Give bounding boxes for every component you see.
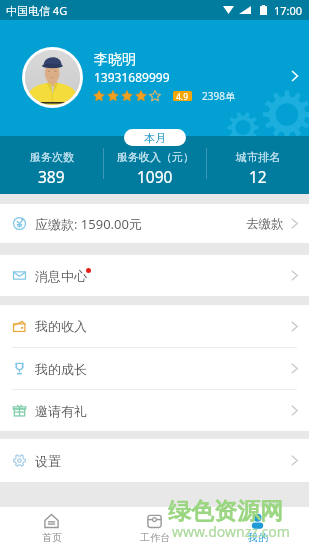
staticText: 城市排名: [236, 150, 280, 164]
button[interactable]: 我的收入: [0, 305, 309, 347]
button[interactable]: 本月: [124, 129, 186, 146]
staticText: 服务收入（元）: [117, 150, 194, 164]
staticText: 中国电信 4G: [6, 3, 68, 18]
staticText: 12: [249, 166, 267, 187]
staticText: 13931689999: [94, 69, 170, 85]
staticText: 工作台: [140, 531, 170, 544]
staticText: 消息中心: [35, 268, 87, 284]
button[interactable]: 我的: [206, 507, 309, 550]
staticText: 邀请有礼: [35, 403, 87, 419]
staticText: 17:00: [274, 3, 303, 18]
button[interactable]: 应缴款: 1590.00元: [0, 204, 309, 243]
other: Profile details: [291, 70, 299, 82]
staticText: 我的成长: [35, 361, 87, 377]
button[interactable]: 工作台: [103, 507, 206, 550]
button[interactable]: 首页: [0, 507, 103, 550]
staticText: 去缴款: [246, 216, 284, 232]
staticText: 389: [38, 166, 65, 187]
staticText: 李晓明: [94, 51, 136, 69]
button[interactable]: 设置: [0, 439, 309, 482]
staticText: 绿色资源网: [168, 497, 283, 526]
staticText: 4.9: [176, 91, 189, 101]
button[interactable]: 邀请有礼: [0, 390, 309, 431]
staticText: 1090: [137, 166, 173, 187]
staticText: 我的: [248, 531, 268, 544]
staticText: 本月: [144, 131, 166, 145]
staticText: 服务次数: [30, 150, 74, 164]
button[interactable]: 李晓明: [0, 20, 309, 136]
staticText: 设置: [35, 453, 61, 469]
button[interactable]: 我的成长: [0, 348, 309, 389]
staticText: 应缴款: 1590.00元: [35, 215, 142, 233]
staticText: www.downzz.com: [172, 522, 290, 541]
button[interactable]: 消息中心: [0, 255, 309, 296]
staticText: 2398单: [202, 89, 235, 103]
staticText: 我的收入: [35, 318, 87, 334]
staticText: 首页: [42, 531, 62, 544]
